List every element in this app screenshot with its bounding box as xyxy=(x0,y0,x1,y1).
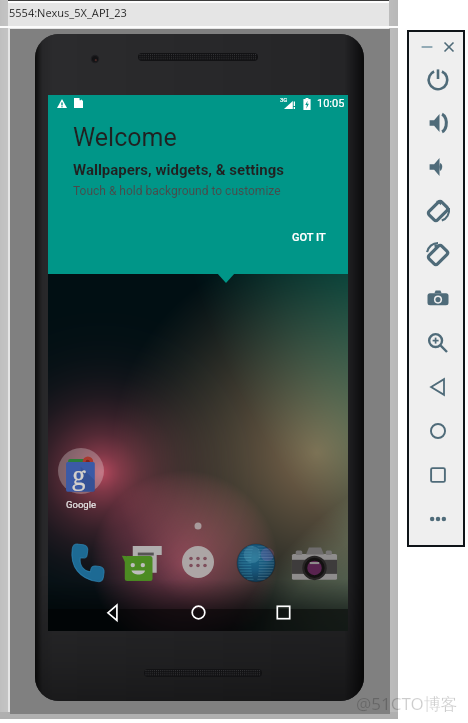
staticText: @51CTO博客 xyxy=(356,692,458,715)
button[interactable]: Rotate left xyxy=(423,196,453,226)
button[interactable]: Browser xyxy=(237,544,275,582)
button[interactable]: Phone xyxy=(66,543,106,583)
button[interactable]: Close xyxy=(440,38,458,56)
button[interactable]: Back xyxy=(423,372,453,402)
staticText: g xyxy=(72,457,86,492)
button[interactable]: Back xyxy=(99,598,128,627)
button[interactable]: Minimize xyxy=(418,38,436,56)
staticText: GOT IT xyxy=(292,231,326,244)
staticText: Google xyxy=(66,499,96,510)
staticText: 10:05 xyxy=(317,97,345,110)
button[interactable]: Home xyxy=(184,598,213,627)
button[interactable]: Home xyxy=(423,416,453,446)
staticText: Welcome xyxy=(73,123,177,152)
other: Warning xyxy=(57,99,67,108)
button[interactable]: GOT IT xyxy=(280,223,338,252)
staticText: 5554:Nexus_5X_API_23 xyxy=(9,5,127,20)
staticText: Touch & hold background to customize xyxy=(73,184,281,198)
button[interactable]: More xyxy=(423,504,453,534)
button[interactable]: Screenshot xyxy=(423,284,453,314)
button[interactable]: Power xyxy=(423,64,453,94)
staticText: 3G xyxy=(280,96,288,103)
button[interactable]: Camera xyxy=(291,545,338,582)
button[interactable]: Messaging xyxy=(121,544,163,583)
staticText: Wallpapers, widgets, & settings xyxy=(73,161,284,179)
button[interactable]: Volume up xyxy=(423,108,453,138)
button[interactable]: Google folder xyxy=(58,448,104,494)
button[interactable]: Apps xyxy=(182,546,214,578)
button[interactable]: Zoom xyxy=(423,328,453,358)
button[interactable]: Overview xyxy=(423,460,453,490)
button[interactable]: Rotate right xyxy=(423,240,453,270)
button[interactable]: Volume down xyxy=(423,152,453,182)
button[interactable]: Recents xyxy=(269,598,298,627)
